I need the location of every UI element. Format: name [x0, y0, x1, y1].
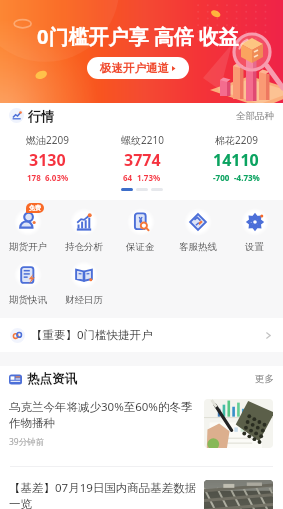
button[interactable]: 【重要】0门槛快捷开户 — [0, 318, 283, 352]
staticText: 64 — [123, 172, 133, 183]
button[interactable]: 免费 — [0, 208, 56, 253]
staticText: 极速开户通道 — [100, 61, 169, 75]
staticText: 178 — [27, 172, 41, 183]
button[interactable]: 燃油2209 — [0, 133, 95, 183]
staticText: 3774 — [124, 149, 161, 171]
staticText: 0门槛开户享 高倍 收益 — [37, 23, 239, 50]
staticText: 行情 — [28, 108, 54, 123]
button[interactable]: 持仓分析 — [56, 208, 112, 253]
staticText: 14110 — [213, 149, 259, 171]
staticText: 螺纹2210 — [121, 133, 164, 147]
staticText: 免费 — [29, 204, 41, 212]
button[interactable]: 全部品种 — [236, 110, 274, 122]
staticText: 财经日历 — [65, 294, 103, 306]
staticText: 3130 — [29, 149, 66, 171]
staticText: 期货快讯 — [9, 294, 47, 306]
staticText: 39分钟前 — [9, 436, 45, 448]
staticText: 更多 — [255, 373, 274, 385]
button[interactable]: 保证金 — [112, 208, 169, 253]
staticText: 6.03% — [45, 172, 69, 183]
staticText: 热点资讯 — [27, 371, 77, 387]
button[interactable]: 0门槛开户享 高倍 收益 — [0, 0, 283, 103]
staticText: 【基差】07月19日国内商品基差数据 一览 — [9, 480, 197, 509]
button[interactable]: 极速开户通道 — [87, 57, 189, 79]
staticText: 全部品种 — [236, 110, 274, 122]
button[interactable]: 客服热线 — [169, 208, 226, 253]
staticText: -4.73% — [234, 172, 260, 183]
button[interactable]: 棉花2209 — [189, 133, 283, 183]
staticText: -700 — [213, 172, 230, 183]
button[interactable]: 螺纹2210 — [95, 133, 189, 183]
button[interactable]: 设置 — [226, 208, 283, 253]
staticText: 棉花2209 — [215, 133, 258, 147]
staticText: 乌克兰今年将减少30%至60%的冬季 作物播种 — [9, 399, 193, 431]
staticText: 【重要】0门槛快捷开户 — [31, 327, 153, 343]
staticText: 保证金 — [126, 241, 155, 253]
staticText: 1.73% — [137, 172, 161, 183]
button[interactable]: 期货快讯 — [0, 261, 56, 306]
staticText: 持仓分析 — [65, 241, 103, 253]
other: 查看详情 — [264, 331, 273, 340]
staticText: 设置 — [245, 241, 264, 253]
button[interactable]: 更多 — [255, 373, 274, 385]
button[interactable]: 财经日历 — [56, 261, 112, 306]
staticText: 期货开户 — [9, 241, 47, 253]
button[interactable]: 乌克兰今年将减少30%至60%的冬季 作物播种 — [0, 392, 283, 466]
button[interactable]: 【基差】07月19日国内商品基差数据 一览 — [0, 467, 283, 509]
staticText: 燃油2209 — [26, 133, 69, 147]
staticText: 客服热线 — [179, 241, 217, 253]
